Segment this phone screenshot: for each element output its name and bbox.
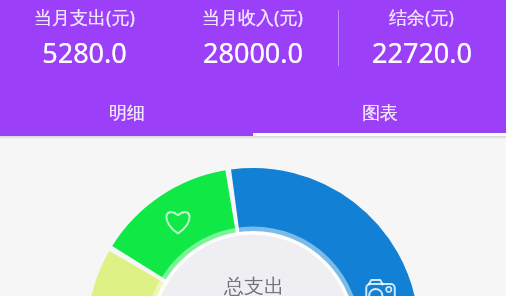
staticText: 明细 xyxy=(109,102,145,125)
staticText: 28000.0 xyxy=(203,34,303,71)
button[interactable]: 当月收入(元) xyxy=(168,5,337,71)
button[interactable]: 结余(元) xyxy=(337,5,506,71)
staticText: 总支出 xyxy=(224,274,284,296)
button[interactable]: 当月支出(元) xyxy=(0,5,168,71)
staticText: 22720.0 xyxy=(372,34,472,71)
staticText: 当月支出(元) xyxy=(34,5,135,30)
staticText: 图表 xyxy=(362,102,398,125)
staticText: 当月收入(元) xyxy=(202,5,303,30)
staticText: 结余(元) xyxy=(389,5,454,30)
button[interactable]: 明细 xyxy=(0,92,253,136)
staticText: 5280.0 xyxy=(42,34,127,71)
button[interactable]: 图表 xyxy=(253,92,506,136)
